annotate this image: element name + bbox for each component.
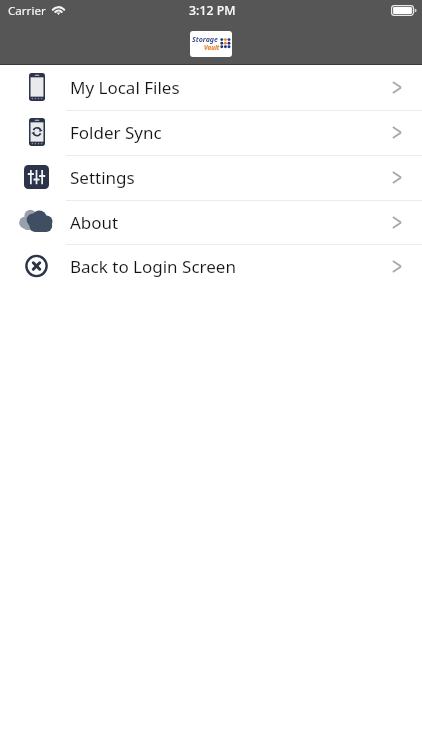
button[interactable]: Back to Login Screen [0, 244, 422, 289]
button[interactable]: My Local Files [0, 65, 422, 110]
staticText: Carrier [8, 3, 46, 19]
button[interactable]: About [0, 200, 422, 245]
staticText: Folder Sync [70, 121, 162, 144]
button[interactable]: Folder Sync [0, 110, 422, 155]
staticText: About [70, 211, 119, 234]
other: Storage Vault logo [190, 31, 232, 57]
staticText: Settings [70, 166, 135, 189]
staticText: Back to Login Screen [70, 255, 236, 278]
staticText: My Local Files [70, 76, 180, 99]
staticText: Storage [192, 34, 219, 44]
button[interactable]: Settings [0, 155, 422, 200]
staticText: 3:12 PM [189, 2, 236, 19]
staticText: Vault [204, 43, 220, 51]
